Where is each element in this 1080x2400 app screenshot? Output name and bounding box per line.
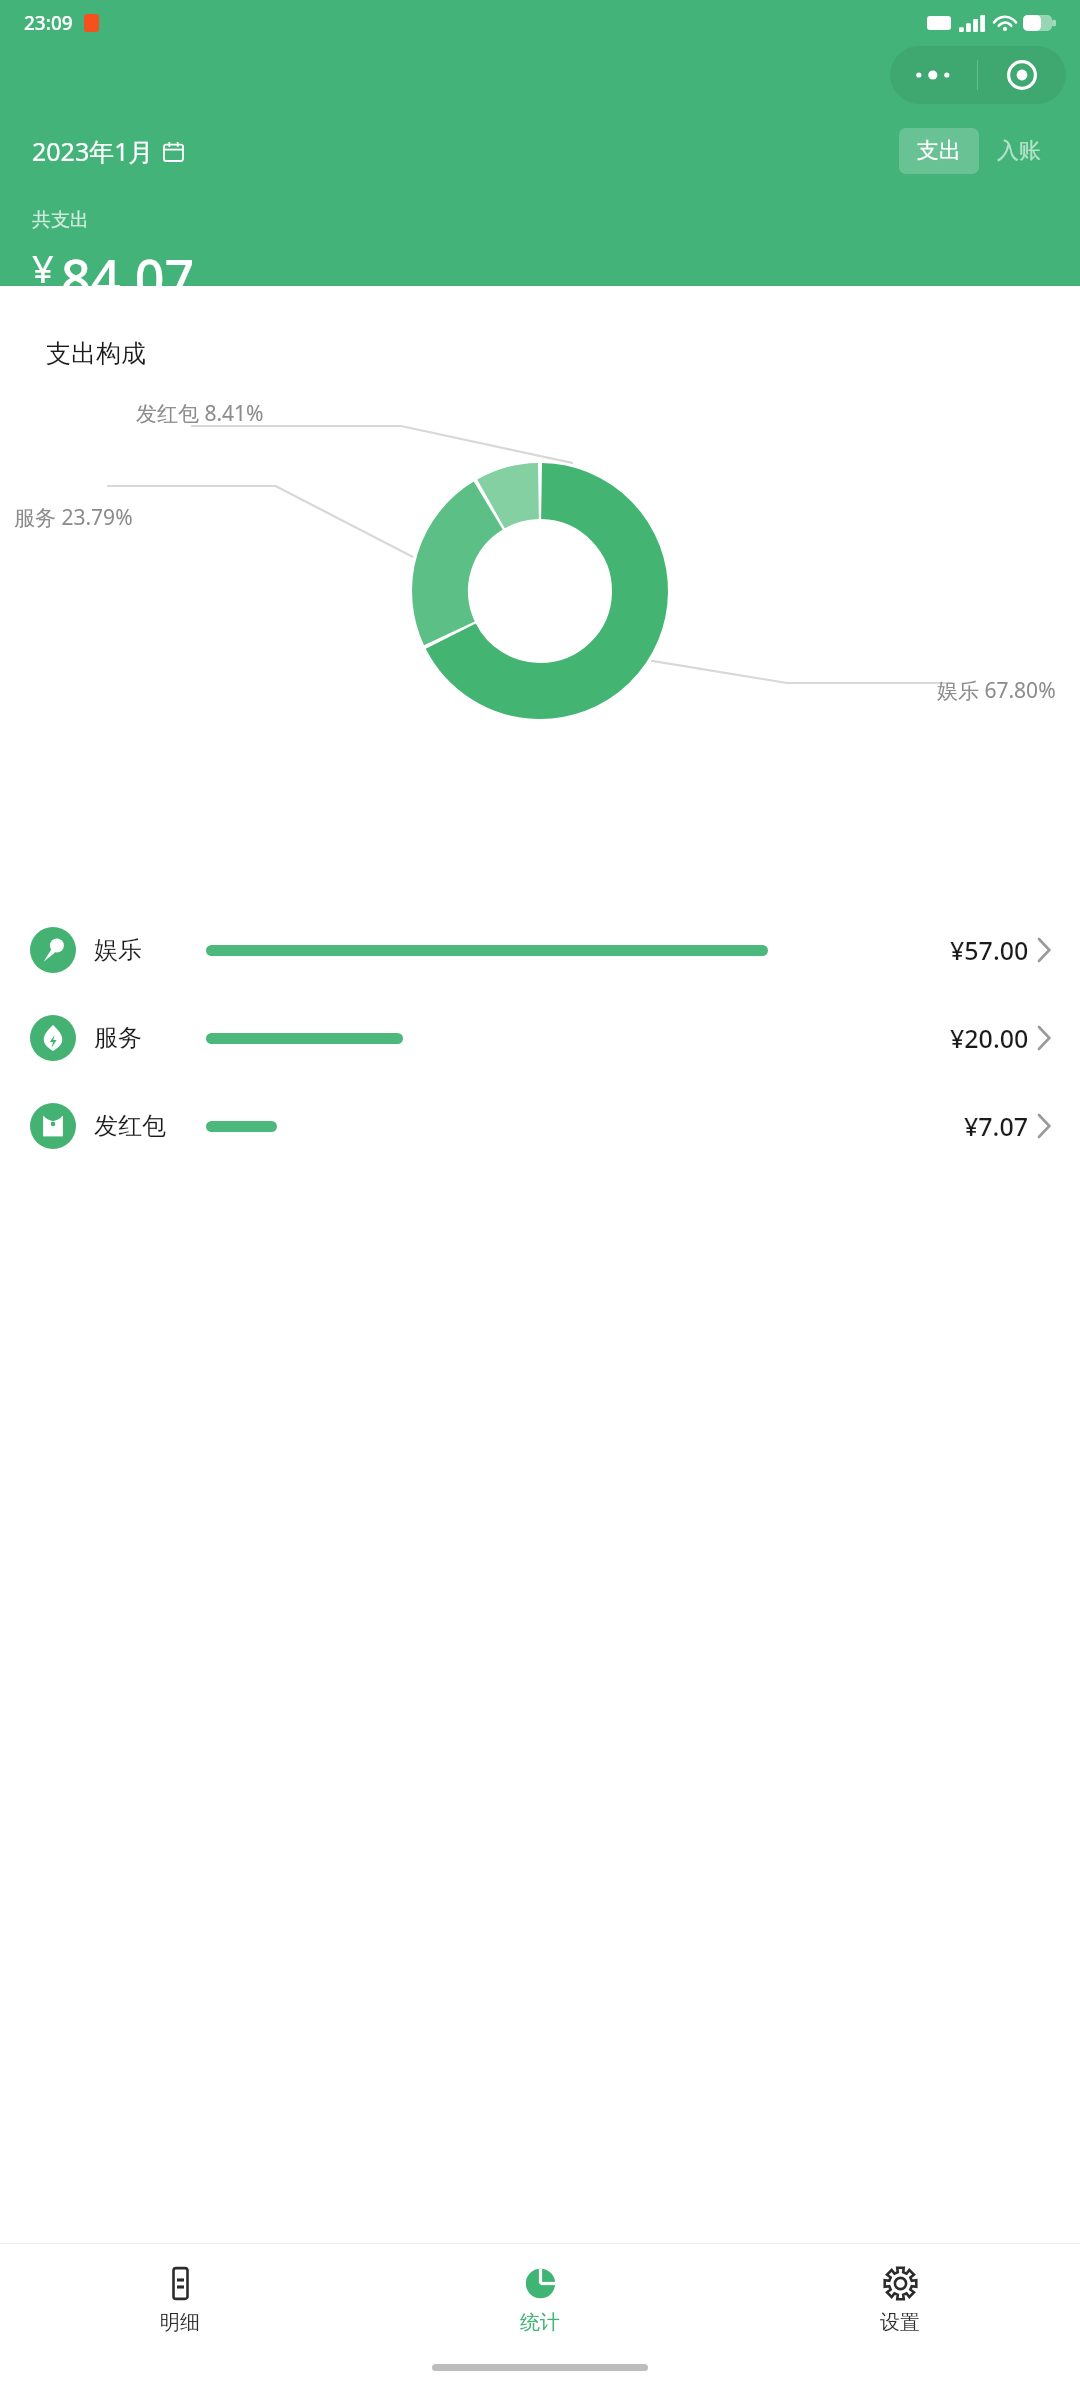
button[interactable]: 娱乐 (0, 921, 1080, 979)
staticText: 明细 (160, 2310, 200, 2335)
staticText: 2023年1月 (32, 134, 154, 168)
staticText: ¥7.07 (964, 1109, 1029, 1143)
button[interactable]: Close (978, 46, 1066, 104)
button[interactable]: 2023年1月 (32, 130, 183, 172)
button[interactable]: 支出 (899, 128, 979, 174)
button[interactable]: 统计 (360, 2244, 720, 2356)
staticText: 娱乐 67.80% (937, 676, 1056, 705)
staticText: 发红包 (94, 1111, 166, 1141)
staticText: 娱乐 (94, 935, 142, 965)
staticText: 23:09 (24, 10, 73, 36)
staticText: 统计 (520, 2310, 560, 2335)
button[interactable]: More (890, 46, 977, 104)
staticText: 发红包 8.41% (136, 399, 264, 428)
staticText: 84.07 (61, 242, 195, 286)
button[interactable]: 发红包 (0, 1097, 1080, 1155)
staticText: 服务 23.79% (14, 503, 133, 532)
staticText: 入账 (997, 137, 1041, 165)
button[interactable]: 服务 (0, 1009, 1080, 1067)
button[interactable]: 入账 (979, 128, 1059, 174)
button[interactable]: 明细 (0, 2244, 360, 2356)
staticText: 服务 (94, 1023, 142, 1053)
staticText: 支出 (917, 137, 961, 165)
staticText: 设置 (880, 2310, 920, 2335)
staticText: 共支出 (32, 208, 89, 232)
button[interactable]: 设置 (720, 2244, 1080, 2356)
staticText: ¥ (32, 242, 54, 286)
staticText: 支出构成 (46, 338, 146, 369)
staticText: ¥20.00 (950, 1021, 1029, 1055)
staticText: ¥57.00 (950, 933, 1029, 967)
